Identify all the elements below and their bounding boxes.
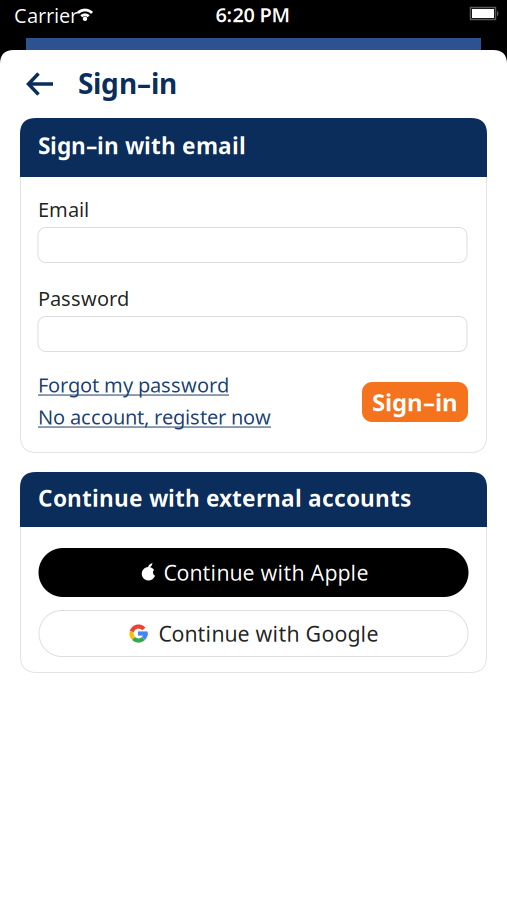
staticText: Sign–in xyxy=(78,64,177,102)
staticText: Continue with external accounts xyxy=(38,483,411,513)
staticText: No account, register now xyxy=(38,403,271,430)
staticText: Carrier xyxy=(14,2,78,29)
staticText: Password xyxy=(38,285,129,312)
staticText: Sign–in with email xyxy=(38,130,246,161)
button[interactable]: Password xyxy=(37,316,467,352)
staticText: 6:20 PM xyxy=(215,1,290,28)
button[interactable]: Continue with Google xyxy=(38,610,468,657)
staticText: Continue with Google xyxy=(158,619,378,648)
staticText: Forgot my password xyxy=(38,371,229,398)
button[interactable]: Continue with Apple xyxy=(38,548,468,597)
button[interactable]: No account, register now xyxy=(38,403,271,430)
button[interactable]: Email xyxy=(37,227,467,263)
staticText: Sign–in xyxy=(372,386,458,418)
staticText: Continue with Apple xyxy=(163,558,368,587)
button[interactable]: Sign–in xyxy=(362,382,468,422)
button[interactable]: Back xyxy=(21,66,61,102)
staticText: Email xyxy=(38,196,89,223)
button[interactable]: Forgot my password xyxy=(38,371,229,398)
